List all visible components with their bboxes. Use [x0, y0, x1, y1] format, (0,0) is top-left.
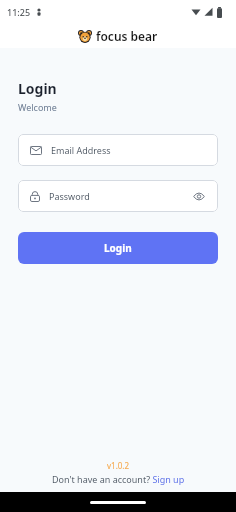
staticText: focus bear — [96, 28, 158, 44]
staticText: Login — [18, 79, 57, 98]
staticText: Email Address — [51, 144, 111, 156]
staticText: Login — [104, 241, 132, 255]
staticText: Password — [49, 190, 90, 202]
button[interactable]: Don't have an account? Sign up — [18, 473, 218, 485]
button[interactable]: Password — [18, 180, 218, 212]
staticText: v1.0.2 — [107, 460, 130, 471]
staticText: Welcome — [18, 101, 57, 113]
staticText: Don't have an account? Sign up — [52, 473, 185, 485]
staticText: 11:25 — [7, 6, 31, 18]
button[interactable]: Email Address — [18, 134, 218, 166]
button[interactable]: Login — [18, 232, 218, 264]
